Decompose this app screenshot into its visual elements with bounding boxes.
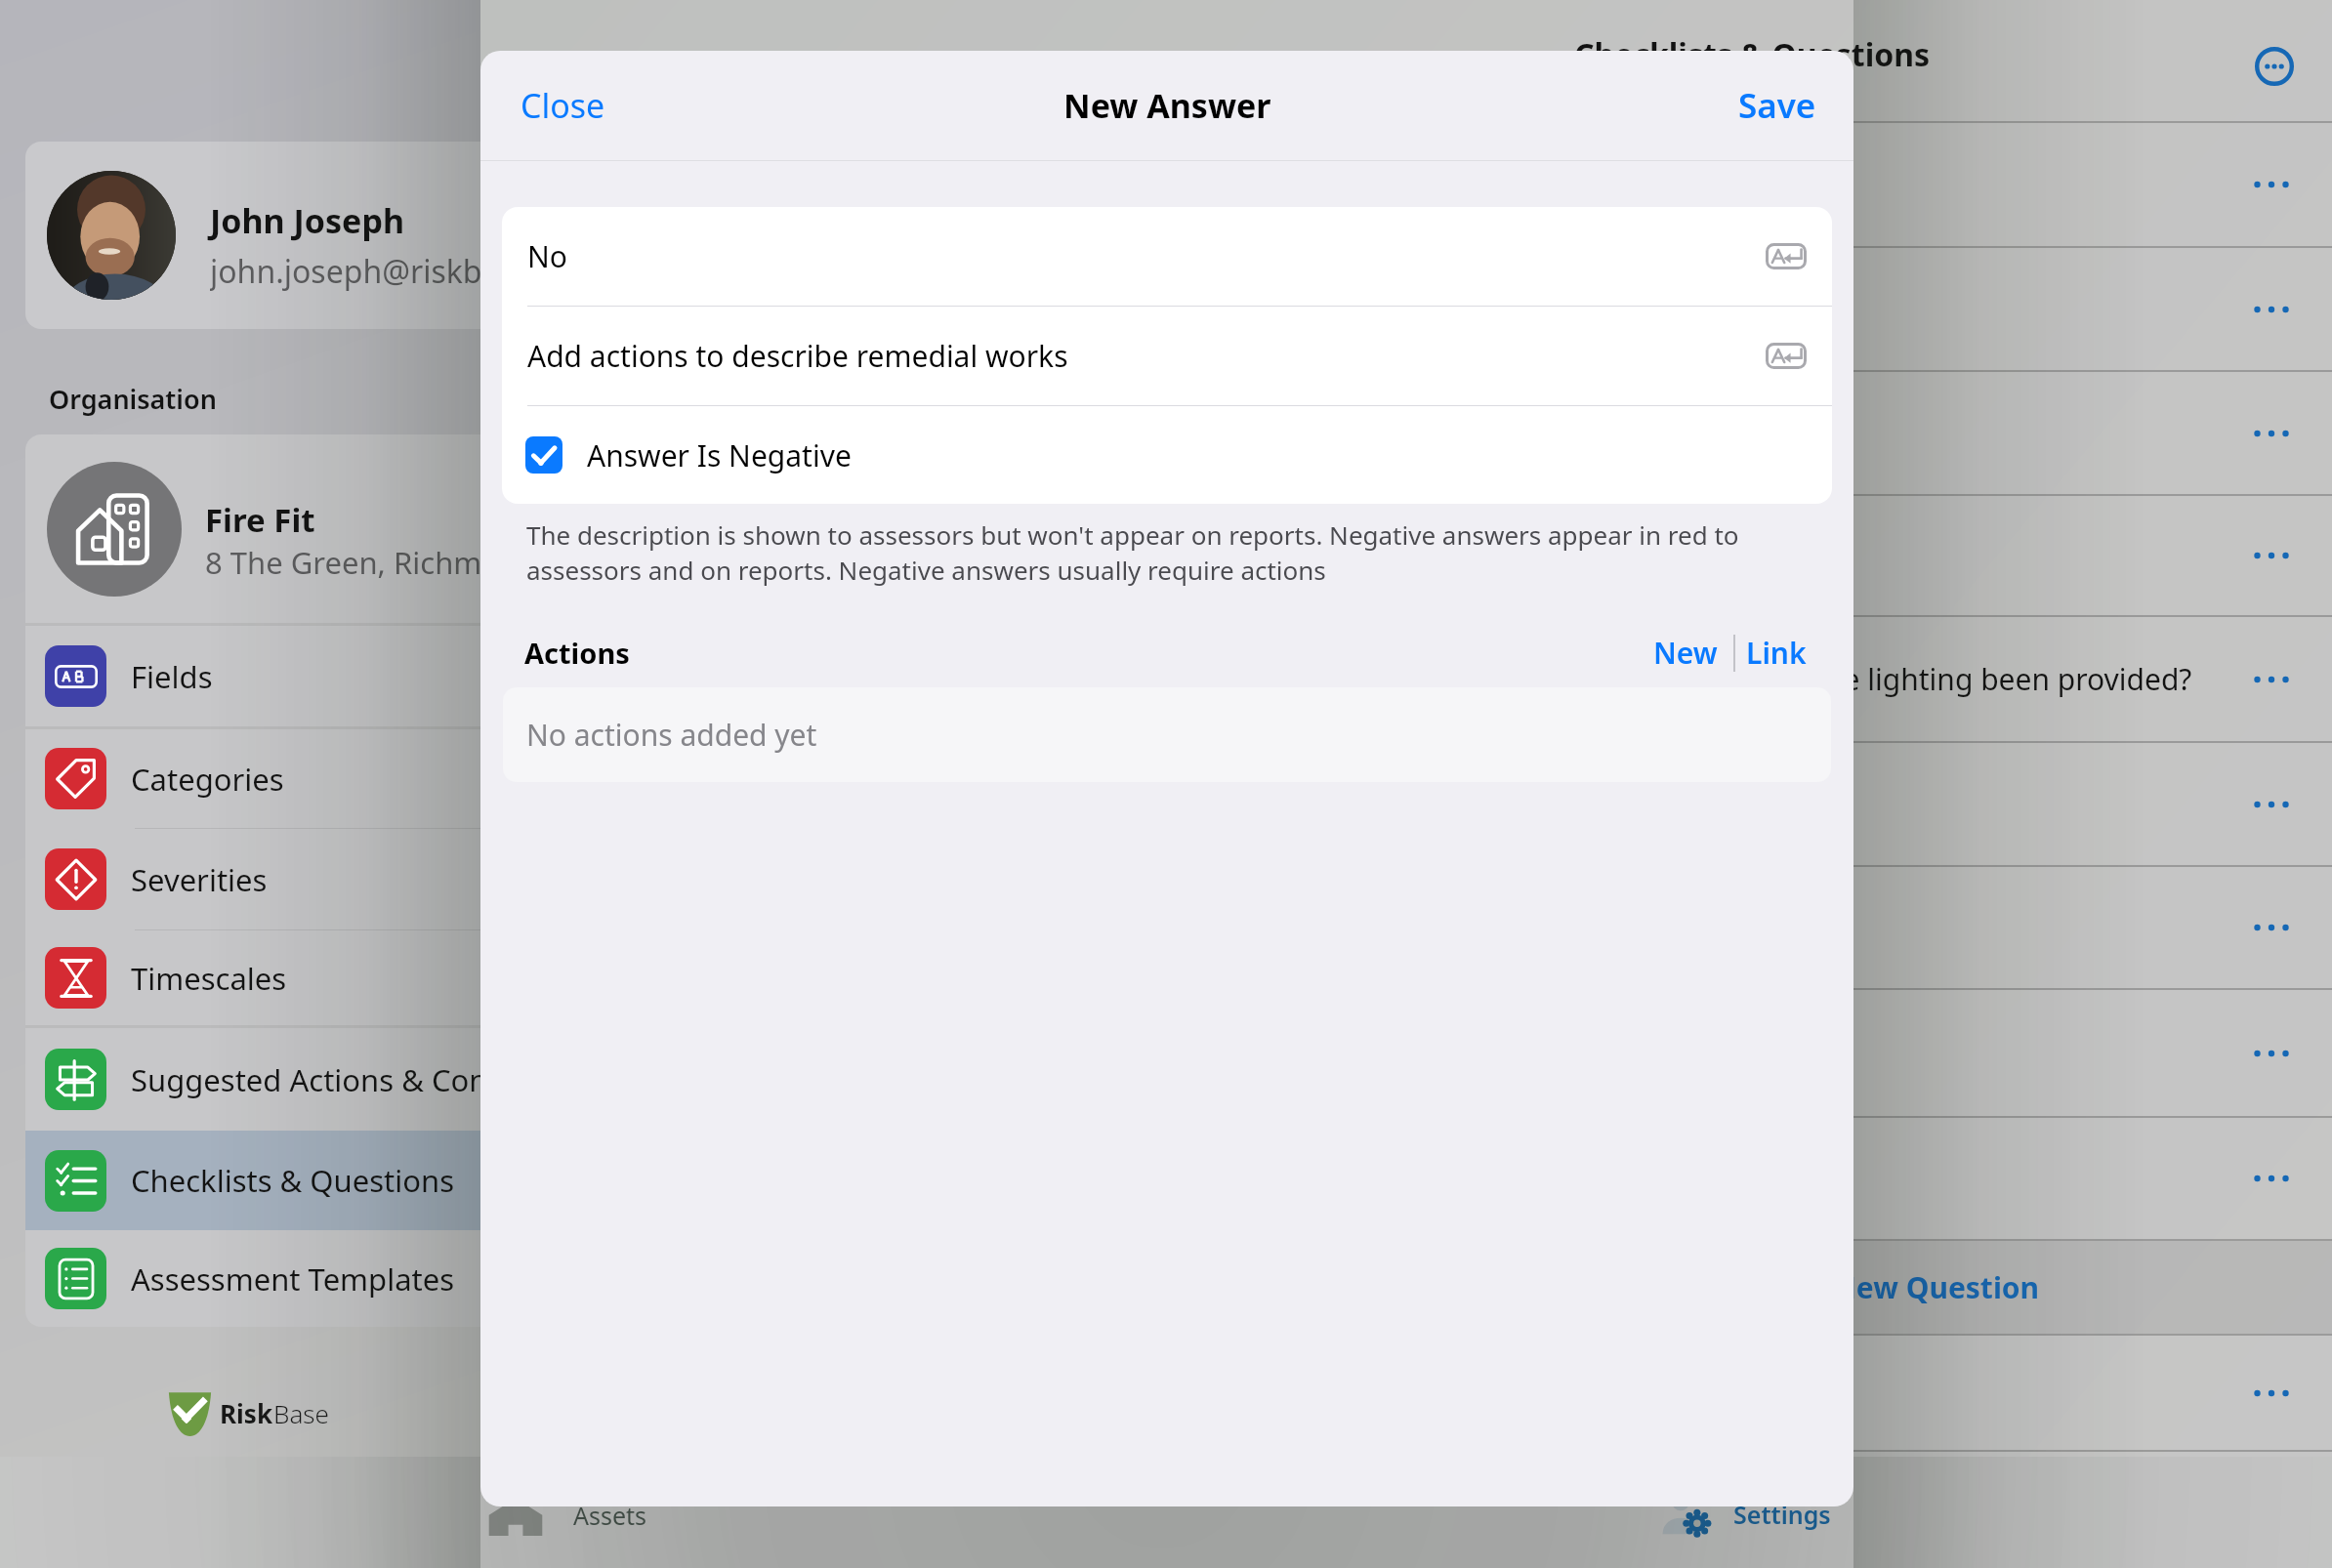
button[interactable]: More options xyxy=(2255,47,2294,86)
staticText: john.joseph@riskbase.uk xyxy=(210,250,480,293)
button[interactable] xyxy=(480,372,2332,494)
button[interactable]: Add actions to describe remedial works xyxy=(502,307,1832,405)
button[interactable]: Save xyxy=(1715,68,1840,143)
staticText: No xyxy=(527,236,567,276)
staticText: Answer Is Negative xyxy=(587,435,852,475)
staticText: Timescales xyxy=(131,958,287,999)
staticText: Base xyxy=(273,1396,329,1430)
staticText: New xyxy=(1653,633,1718,673)
button[interactable]: Assessment Templates xyxy=(25,1230,480,1327)
button[interactable]: Has emergency escape lighting been provi… xyxy=(480,617,2332,741)
staticText: Checklists & Questions xyxy=(1574,33,1931,76)
staticText: Severities xyxy=(131,859,268,900)
staticText: Close xyxy=(521,83,605,128)
staticText: Fire Fit xyxy=(205,498,315,542)
button[interactable]: Fire Fit xyxy=(25,434,480,623)
button[interactable] xyxy=(480,743,2332,865)
button[interactable] xyxy=(480,1118,2332,1239)
button[interactable]: Close xyxy=(497,69,629,142)
staticText: John Joseph xyxy=(210,198,405,243)
staticText: Fields xyxy=(131,656,213,697)
button[interactable]: Assets xyxy=(485,1496,647,1535)
staticText: Suggested Actions & Controls xyxy=(131,1059,480,1100)
button[interactable]: John Joseph xyxy=(25,142,480,329)
button[interactable]: Answer Is Negative xyxy=(502,406,1832,504)
button[interactable]: Checklists & Questions xyxy=(25,1131,480,1230)
button[interactable]: Categories xyxy=(25,729,480,828)
staticText: Assessment Templates xyxy=(131,1259,455,1300)
staticText: 8 The Green, Richmond xyxy=(205,542,480,583)
staticText: Add actions to describe remedial works xyxy=(527,336,1068,376)
staticText: The description is shown to assessors bu… xyxy=(526,517,1739,588)
button[interactable]: Suggested Actions & Controls xyxy=(25,1028,480,1131)
button[interactable] xyxy=(480,1336,2332,1450)
button[interactable] xyxy=(480,248,2332,370)
button[interactable]: Timescales xyxy=(25,930,480,1025)
staticText: New Answer xyxy=(1063,83,1271,128)
button[interactable]: Settings xyxy=(1655,1494,1831,1535)
button[interactable]: Severities xyxy=(25,829,480,929)
staticText: Link xyxy=(1746,633,1807,673)
button[interactable]: Fields xyxy=(25,626,480,726)
button[interactable] xyxy=(480,990,2332,1116)
staticText: Fire Risk Assessment xyxy=(1574,80,1851,118)
button[interactable]: Link xyxy=(1735,625,1818,681)
staticText: Has emergency escape lighting been provi… xyxy=(1543,659,2192,699)
button[interactable]: New xyxy=(1634,625,1733,681)
staticText: Actions xyxy=(524,634,630,672)
button[interactable]: ADD New Question xyxy=(480,1241,2332,1334)
staticText: ADD New Question xyxy=(1762,1267,2040,1307)
staticText: No actions added yet xyxy=(526,715,817,755)
button[interactable] xyxy=(480,867,2332,988)
staticText: Assets xyxy=(573,1499,647,1532)
staticText: Risk xyxy=(220,1396,273,1430)
button[interactable] xyxy=(480,123,2332,246)
staticText: Organisation xyxy=(49,381,217,417)
staticText: Checklists & Questions xyxy=(131,1160,455,1201)
staticText: Categories xyxy=(131,759,284,800)
button[interactable]: No actions added yet xyxy=(503,687,1831,782)
button[interactable] xyxy=(480,496,2332,615)
staticText: Save xyxy=(1738,82,1816,129)
button[interactable]: No xyxy=(502,207,1832,306)
staticText: Settings xyxy=(1733,1498,1831,1531)
